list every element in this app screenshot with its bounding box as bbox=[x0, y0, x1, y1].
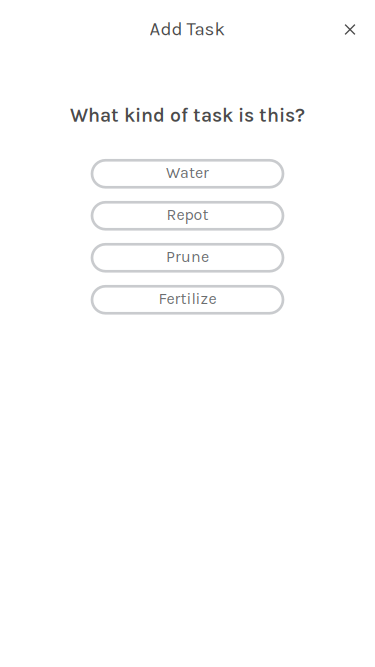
staticText: Water bbox=[166, 163, 209, 182]
staticText: What kind of task is this? bbox=[70, 104, 305, 127]
staticText: Add Task bbox=[149, 18, 225, 40]
staticText: Fertilize bbox=[158, 289, 216, 308]
staticText: Prune bbox=[166, 247, 209, 266]
button[interactable]: Fertilize bbox=[91, 285, 284, 315]
staticText: Repot bbox=[166, 205, 208, 224]
button[interactable]: Water bbox=[91, 159, 284, 189]
button[interactable]: Close bbox=[331, 10, 369, 48]
button[interactable]: Repot bbox=[91, 201, 284, 231]
button[interactable]: Prune bbox=[91, 243, 284, 273]
